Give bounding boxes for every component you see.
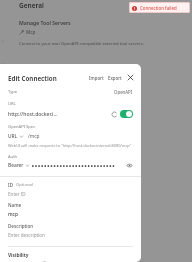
staticText: Visibility <box>8 252 29 259</box>
button[interactable]: Close <box>126 73 135 82</box>
staticText: WebUI will make requests to "http://host… <box>8 143 132 148</box>
button[interactable]: OpenAPI <box>114 89 133 95</box>
staticText: Description <box>8 223 34 229</box>
staticText: Mcp <box>26 29 36 35</box>
staticText: Manage Tool Servers <box>19 19 71 26</box>
staticText: URL <box>8 101 16 107</box>
staticText: Type <box>8 89 18 95</box>
staticText: Bearer <box>8 162 24 169</box>
staticText: OpenAPI Spec <box>8 124 36 130</box>
button[interactable]: Enabled <box>120 110 133 118</box>
staticText: General <box>19 1 44 10</box>
button[interactable]: Import <box>88 75 105 81</box>
staticText: Auth <box>8 154 18 160</box>
button[interactable]: mcp <box>8 211 19 218</box>
button[interactable]: Export <box>107 75 123 81</box>
staticText: /mcp <box>28 133 40 140</box>
staticText: Edit Connection <box>8 74 57 82</box>
staticText: Optional <box>16 182 33 188</box>
staticText: http://host.docker.internal:8080 <box>8 111 59 118</box>
button[interactable]: Bearer <box>8 162 29 169</box>
button[interactable]: URL <box>8 133 23 140</box>
button[interactable]: Enter ID <box>8 191 26 197</box>
staticText: Connection failed <box>140 5 177 11</box>
button[interactable]: Connection failed <box>129 2 190 13</box>
button[interactable]: Refresh <box>110 110 118 118</box>
staticText: URL <box>8 133 18 140</box>
staticText: ID <box>8 182 13 188</box>
staticText: Name <box>8 202 22 208</box>
staticText: Connect to your own OpenAPI compatible e… <box>19 41 144 47</box>
button[interactable]: Show password <box>126 162 133 169</box>
button[interactable]: Enter description <box>8 232 45 238</box>
